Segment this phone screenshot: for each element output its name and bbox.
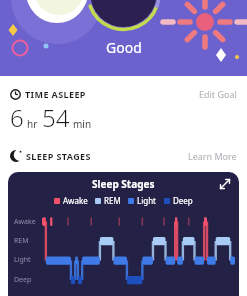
- staticText: Light: [14, 255, 31, 265]
- staticText: Awake: [14, 217, 36, 227]
- staticText: Deep: [14, 275, 32, 285]
- button[interactable]: Learn More: [188, 150, 237, 162]
- staticText: Awake: [63, 195, 88, 206]
- staticText: Edit Goal: [199, 88, 237, 100]
- staticText: Learn More: [188, 150, 237, 162]
- staticText: Good: [106, 38, 142, 57]
- staticText: min: [73, 117, 92, 131]
- button[interactable]: Edit Goal: [199, 88, 237, 100]
- staticText: 6: [10, 101, 24, 134]
- staticText: Sleep Stages: [92, 177, 155, 191]
- staticText: Light: [137, 195, 157, 206]
- button[interactable]: Expand chart: [217, 176, 233, 192]
- staticText: REM: [104, 195, 121, 206]
- staticText: Deep: [173, 195, 193, 206]
- staticText: REM: [14, 236, 29, 246]
- staticText: hr: [27, 117, 38, 131]
- staticText: SLEEP STAGES: [26, 150, 91, 162]
- button[interactable]: Sleep Stages: [8, 172, 239, 296]
- staticText: 54: [42, 101, 70, 134]
- staticText: TIME ASLEEP: [25, 88, 86, 100]
